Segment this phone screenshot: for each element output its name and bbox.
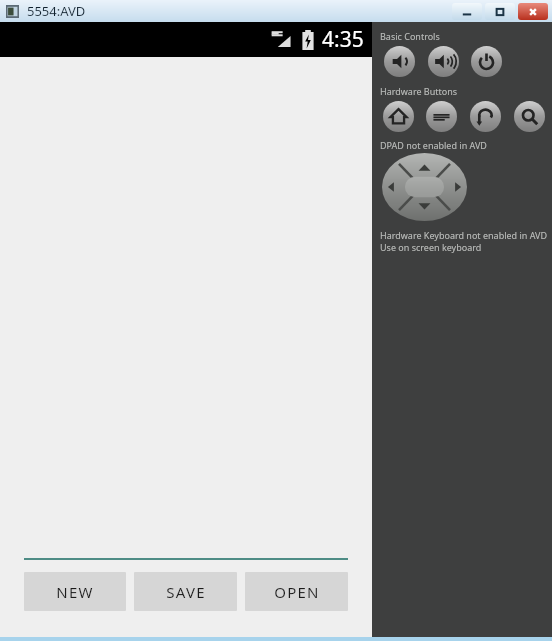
button[interactable]: Volume up [428,46,459,77]
button[interactable]: Power [471,46,502,77]
button[interactable]: Window [485,3,515,20]
button[interactable]: SAVE [134,572,237,611]
button[interactable]: Close [518,3,548,20]
staticText: Basic Controls [380,30,440,42]
button[interactable]: Back [470,101,501,132]
button[interactable]: DPAD [382,153,467,221]
staticText: NEW [56,582,94,602]
button[interactable]: NEW [24,572,126,611]
staticText: 5554:AVD [27,2,86,20]
staticText: DPAD not enabled in AVD [380,139,487,151]
staticText: Hardware Buttons [380,85,458,97]
button[interactable]: Window [452,3,482,20]
button[interactable]: Home [383,101,414,132]
staticText: OPEN [274,582,320,602]
button[interactable]: Menu [426,101,457,132]
button[interactable]: Search [514,101,545,132]
button[interactable]: OPEN [245,572,348,611]
staticText: SAVE [166,582,206,602]
staticText: 4:35 [322,25,364,54]
staticText: Use on screen keyboard [380,241,482,253]
staticText: Hardware Keyboard not enabled in AVD [380,229,548,241]
button[interactable]: Volume down [384,46,415,77]
